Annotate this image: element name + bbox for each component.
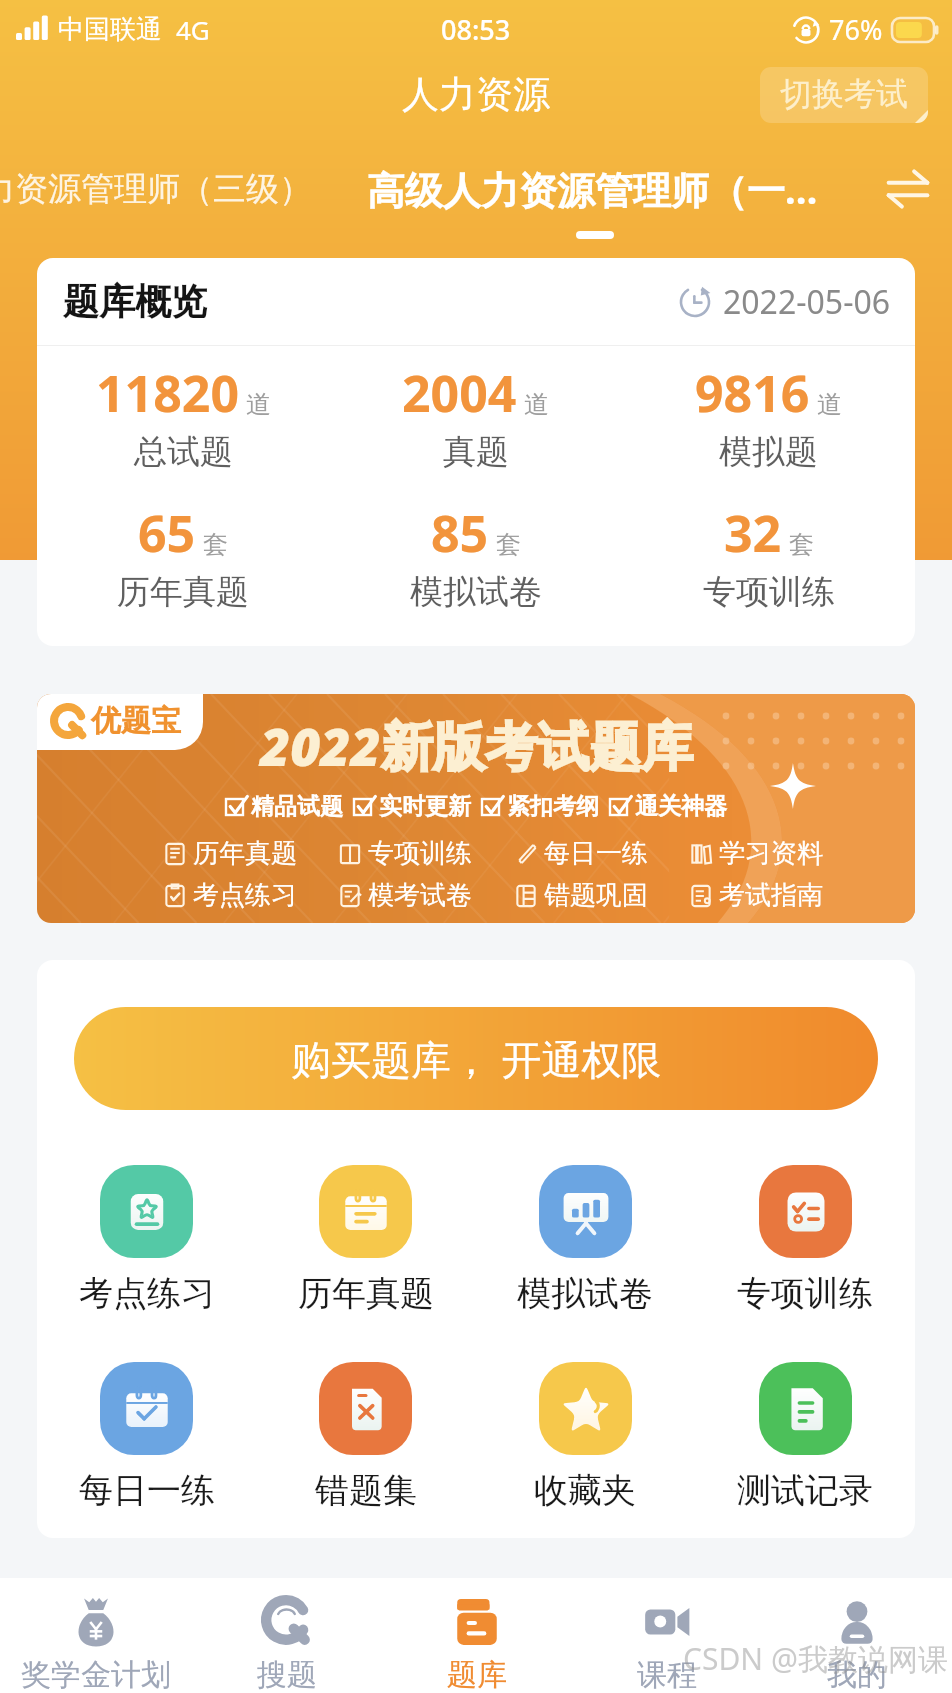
staticText: 总试题: [134, 431, 233, 473]
button[interactable]: Switch exam list: [864, 145, 952, 248]
button[interactable]: 题库: [382, 1578, 572, 1693]
button[interactable]: 32: [622, 499, 915, 613]
staticText: 11820: [96, 359, 239, 427]
staticText: 优题宝: [91, 702, 181, 740]
staticText: 4G: [176, 12, 210, 47]
staticText: 历年真题: [193, 837, 297, 870]
staticText: 考点练习: [79, 1272, 215, 1315]
staticText: 道: [524, 389, 549, 420]
button[interactable]: 模拟试卷: [475, 1165, 695, 1315]
staticText: 专项训练: [703, 571, 835, 613]
button[interactable]: 我的: [762, 1578, 952, 1693]
staticText: 通关神器: [635, 792, 727, 821]
staticText: 高级人力资源管理师（一…: [367, 163, 818, 215]
staticText: 奖学金计划: [21, 1656, 171, 1693]
button[interactable]: 2004: [329, 359, 622, 473]
staticText: 购买题库， 开通权限: [291, 1031, 662, 1086]
staticText: 套: [496, 529, 521, 560]
staticText: 32: [724, 499, 782, 567]
button[interactable]: 高级人力资源管理师（一…: [340, 145, 845, 248]
staticText: CSDN @我教说网课: [683, 1638, 948, 1679]
staticText: 实时更新: [379, 792, 471, 821]
button[interactable]: 搜题: [191, 1578, 382, 1693]
button[interactable]: 11820: [37, 359, 329, 473]
staticText: 精品试题: [251, 792, 343, 821]
staticText: 76%: [829, 11, 883, 48]
staticText: 2004: [402, 359, 517, 427]
staticText: 每日一练: [544, 837, 648, 870]
staticText: 新版考试题库: [381, 715, 693, 781]
staticText: 套: [789, 529, 814, 560]
button[interactable]: 课程: [572, 1578, 762, 1693]
button[interactable]: 专项训练: [695, 1165, 915, 1315]
staticText: 紧扣考纲: [507, 792, 599, 821]
staticText: 我的: [827, 1656, 887, 1693]
staticText: 模考试卷: [368, 879, 472, 912]
button[interactable]: 每日一练: [37, 1362, 256, 1512]
staticText: 学习资料: [719, 837, 823, 870]
staticText: 中国联通: [58, 13, 162, 46]
button[interactable]: 优题宝: [37, 694, 915, 923]
button[interactable]: 错题集: [256, 1362, 475, 1512]
staticText: 9816: [695, 359, 810, 427]
staticText: 专项训练: [737, 1272, 873, 1315]
button[interactable]: 奖学金计划: [0, 1578, 191, 1693]
staticText: 模拟试卷: [517, 1272, 653, 1315]
button[interactable]: 测试记录: [695, 1362, 915, 1512]
staticText: 历年真题: [117, 571, 249, 613]
staticText: 力资源管理师（三级）: [0, 168, 312, 210]
button[interactable]: 力资源管理师（三级）: [0, 145, 312, 248]
staticText: 2022: [260, 710, 381, 781]
staticText: 道: [246, 389, 271, 420]
button[interactable]: 切换考试: [760, 67, 928, 123]
button[interactable]: 考点练习: [37, 1165, 256, 1315]
staticText: 题库: [447, 1656, 507, 1693]
staticText: 错题巩固: [544, 879, 648, 912]
staticText: 08:53: [441, 11, 511, 48]
staticText: 课程: [637, 1656, 697, 1693]
staticText: 题库概览: [63, 279, 207, 324]
staticText: 人力资源: [402, 71, 550, 118]
staticText: 2022-05-06: [723, 280, 891, 324]
staticText: 历年真题: [298, 1272, 434, 1315]
staticText: 套: [203, 529, 228, 560]
button[interactable]: 85: [329, 499, 622, 613]
staticText: 切换考试: [780, 74, 908, 114]
staticText: 搜题: [257, 1656, 317, 1693]
staticText: 专项训练: [368, 837, 472, 870]
button[interactable]: 购买题库， 开通权限: [74, 1007, 878, 1110]
staticText: 考试指南: [719, 879, 823, 912]
staticText: 65: [138, 499, 196, 567]
staticText: 考点练习: [193, 879, 297, 912]
staticText: 收藏夹: [534, 1469, 636, 1512]
button[interactable]: 9816: [622, 359, 915, 473]
staticText: 错题集: [315, 1469, 417, 1512]
button[interactable]: 收藏夹: [475, 1362, 695, 1512]
button[interactable]: 历年真题: [256, 1165, 475, 1315]
staticText: 测试记录: [737, 1469, 873, 1512]
staticText: 模拟题: [719, 431, 818, 473]
button[interactable]: 65: [37, 499, 329, 613]
staticText: 真题: [443, 431, 509, 473]
staticText: 每日一练: [79, 1469, 215, 1512]
staticText: 85: [431, 499, 489, 567]
staticText: 模拟试卷: [410, 571, 542, 613]
staticText: 道: [817, 389, 842, 420]
